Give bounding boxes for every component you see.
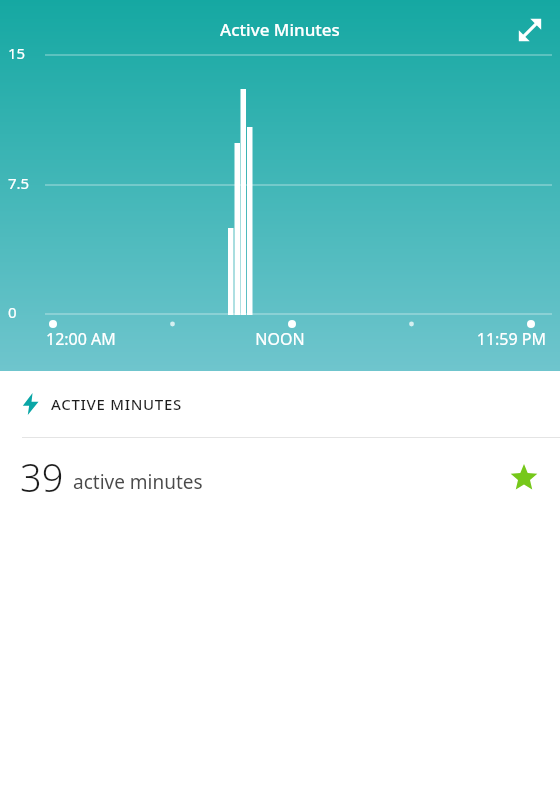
staticText: 0 (8, 302, 17, 322)
staticText: NOON (0, 328, 560, 350)
button[interactable]: ACTIVE MINUTES (0, 371, 560, 437)
button[interactable]: 39 (0, 438, 560, 516)
staticText: 7.5 (8, 173, 30, 193)
staticText: ACTIVE MINUTES (51, 394, 182, 414)
staticText: active minutes (73, 469, 203, 495)
staticText: Active Minutes (0, 18, 560, 41)
button[interactable]: Expand chart (508, 8, 552, 52)
staticText: 39 (20, 451, 64, 503)
staticText: 11:59 PM (0, 328, 546, 350)
staticText: 12:00 AM (46, 328, 116, 350)
staticText: 15 (8, 43, 26, 63)
